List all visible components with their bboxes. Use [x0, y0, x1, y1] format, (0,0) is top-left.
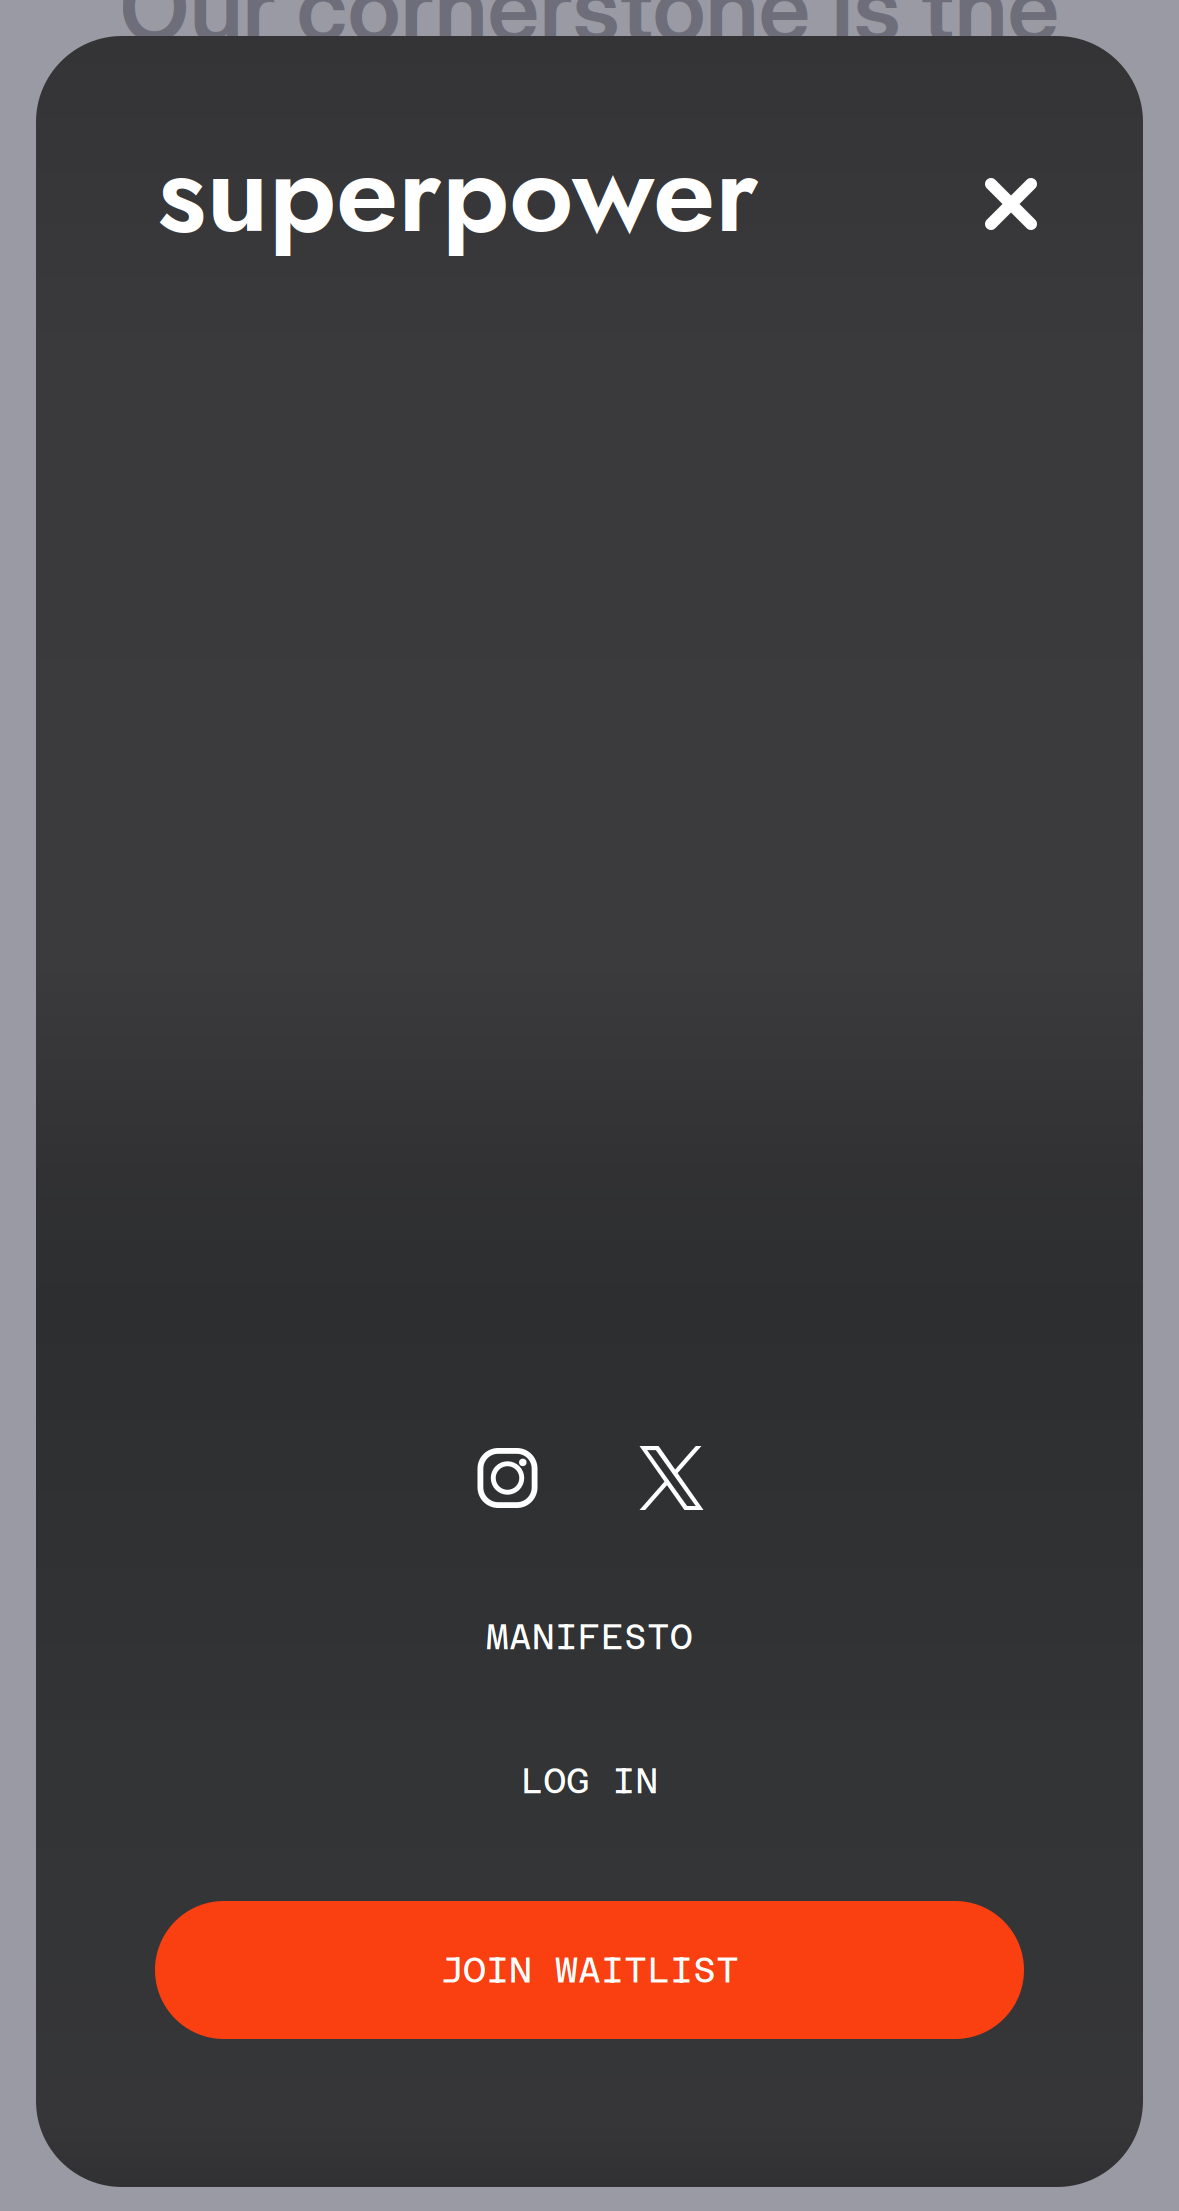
staticText: MANIFESTO [486, 1617, 693, 1657]
button[interactable]: X [623, 1442, 719, 1514]
button[interactable]: Close [971, 148, 1059, 236]
button[interactable]: JOIN WAITLIST [155, 1901, 1024, 2039]
staticText: superpower [157, 111, 759, 273]
staticText: JOIN WAITLIST [440, 1949, 739, 1991]
staticText: LOG IN [520, 1761, 658, 1801]
button[interactable]: MANIFESTO [369, 1613, 809, 1661]
staticText: Our cornerstone is the [119, 0, 1059, 63]
button[interactable]: LOG IN [369, 1757, 809, 1805]
button[interactable]: Instagram [459, 1442, 555, 1514]
